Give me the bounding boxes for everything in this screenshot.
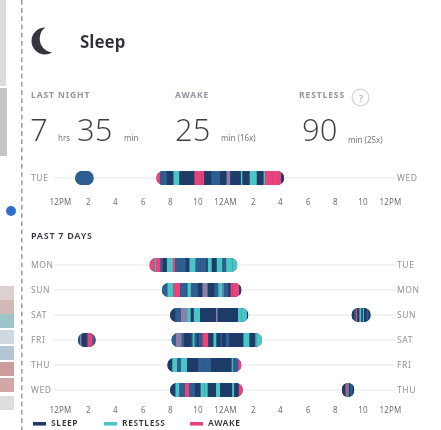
staticText: min (25x) — [348, 134, 383, 145]
staticText: SAT — [31, 309, 48, 321]
staticText: 4 — [113, 196, 118, 207]
staticText: AWAKE — [208, 417, 241, 429]
button[interactable]: Sleep — [28, 22, 158, 60]
staticText: MON — [397, 284, 420, 296]
button[interactable]: Past 7 days sleep timelines — [26, 252, 418, 400]
staticText: 2 — [251, 196, 256, 207]
staticText: 2 — [251, 404, 256, 415]
staticText: LAST NIGHT — [31, 89, 91, 101]
staticText: THU — [397, 384, 417, 396]
staticText: 4 — [278, 404, 283, 415]
staticText: 6 — [306, 196, 311, 207]
button[interactable]: Last night sleep timeline, 7 hours 35 mi… — [26, 162, 418, 214]
staticText: SUN — [397, 309, 417, 321]
staticText: 4 — [278, 196, 283, 207]
staticText: 8 — [333, 196, 338, 207]
staticText: SUN — [31, 284, 51, 296]
staticText: SLEEP — [51, 417, 79, 429]
staticText: TUE — [397, 259, 415, 271]
staticText: FRI — [397, 359, 412, 371]
staticText: 4 — [113, 404, 118, 415]
staticText: FRI — [31, 334, 46, 346]
staticText: 8 — [168, 196, 173, 207]
staticText: 6 — [306, 404, 311, 415]
staticText: AWAKE — [175, 89, 210, 101]
staticText: hrs — [58, 132, 71, 143]
staticText: THU — [31, 359, 51, 371]
staticText: 12AM — [214, 404, 237, 415]
staticText: TUE — [31, 172, 49, 184]
staticText: 10 — [193, 404, 203, 415]
staticText: 6 — [141, 404, 146, 415]
staticText: WED — [397, 172, 418, 184]
staticText: ? — [359, 92, 363, 104]
staticText: WED — [31, 384, 52, 396]
staticText: 8 — [333, 404, 338, 415]
staticText: 12PM — [49, 404, 72, 415]
staticText: 10 — [358, 196, 368, 207]
staticText: 2 — [86, 404, 91, 415]
staticText: 90 — [302, 108, 338, 150]
staticText: 2 — [86, 196, 91, 207]
staticText: Sleep — [80, 30, 126, 53]
staticText: 25 — [175, 108, 211, 150]
staticText: MON — [31, 259, 54, 271]
staticText: SAT — [397, 334, 414, 346]
staticText: RESTLESS — [299, 89, 346, 101]
staticText: 12PM — [379, 196, 402, 207]
staticText: 12AM — [214, 196, 237, 207]
staticText: 10 — [358, 404, 368, 415]
staticText: 6 — [141, 196, 146, 207]
staticText: min (16x) — [221, 132, 256, 143]
staticText: 12PM — [49, 196, 72, 207]
staticText: RESTLESS — [122, 417, 166, 429]
staticText: 8 — [168, 404, 173, 415]
staticText: 35 — [77, 108, 113, 150]
staticText: 10 — [193, 196, 203, 207]
staticText: min — [124, 132, 139, 143]
staticText: 12PM — [379, 404, 402, 415]
staticText: PAST 7 DAYS — [31, 229, 93, 241]
staticText: 7 — [30, 108, 48, 150]
button[interactable]: About restless sleep — [352, 89, 369, 106]
